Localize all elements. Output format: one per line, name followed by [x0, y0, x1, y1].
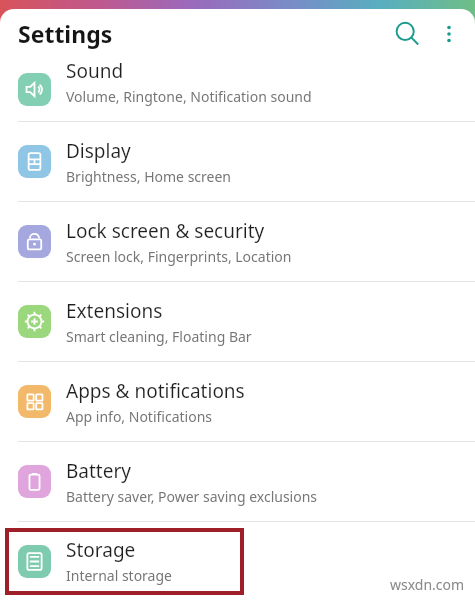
staticText: Sound — [66, 58, 124, 84]
button[interactable]: Storage — [0, 522, 475, 600]
staticText: App info, Notifications — [66, 407, 213, 426]
staticText: Display — [66, 138, 131, 164]
button[interactable]: More options — [429, 14, 469, 54]
staticText: Battery saver, Power saving exclusions — [66, 487, 318, 506]
staticText: wsxdn.com — [390, 575, 465, 594]
button[interactable]: Lock screen & security — [0, 202, 475, 281]
staticText: Smart cleaning, Floating Bar — [66, 327, 252, 346]
staticText: Volume, Ringtone, Notification sound — [66, 87, 312, 106]
staticText: Battery — [66, 458, 131, 484]
staticText: Brightness, Home screen — [66, 167, 232, 186]
button[interactable]: Battery — [0, 442, 475, 521]
staticText: Extensions — [66, 298, 163, 324]
button[interactable]: Apps & notifications — [0, 362, 475, 441]
staticText: Storage — [66, 537, 136, 563]
button[interactable]: Display — [0, 122, 475, 201]
staticText: Lock screen & security — [66, 218, 265, 244]
staticText: Screen lock, Fingerprints, Location — [66, 247, 292, 266]
button[interactable]: Extensions — [0, 282, 475, 361]
staticText: Internal storage — [66, 566, 172, 585]
button[interactable]: Sound — [0, 58, 475, 121]
staticText: Apps & notifications — [66, 378, 245, 404]
staticText: Settings — [18, 18, 113, 49]
button[interactable]: Search — [385, 12, 429, 56]
